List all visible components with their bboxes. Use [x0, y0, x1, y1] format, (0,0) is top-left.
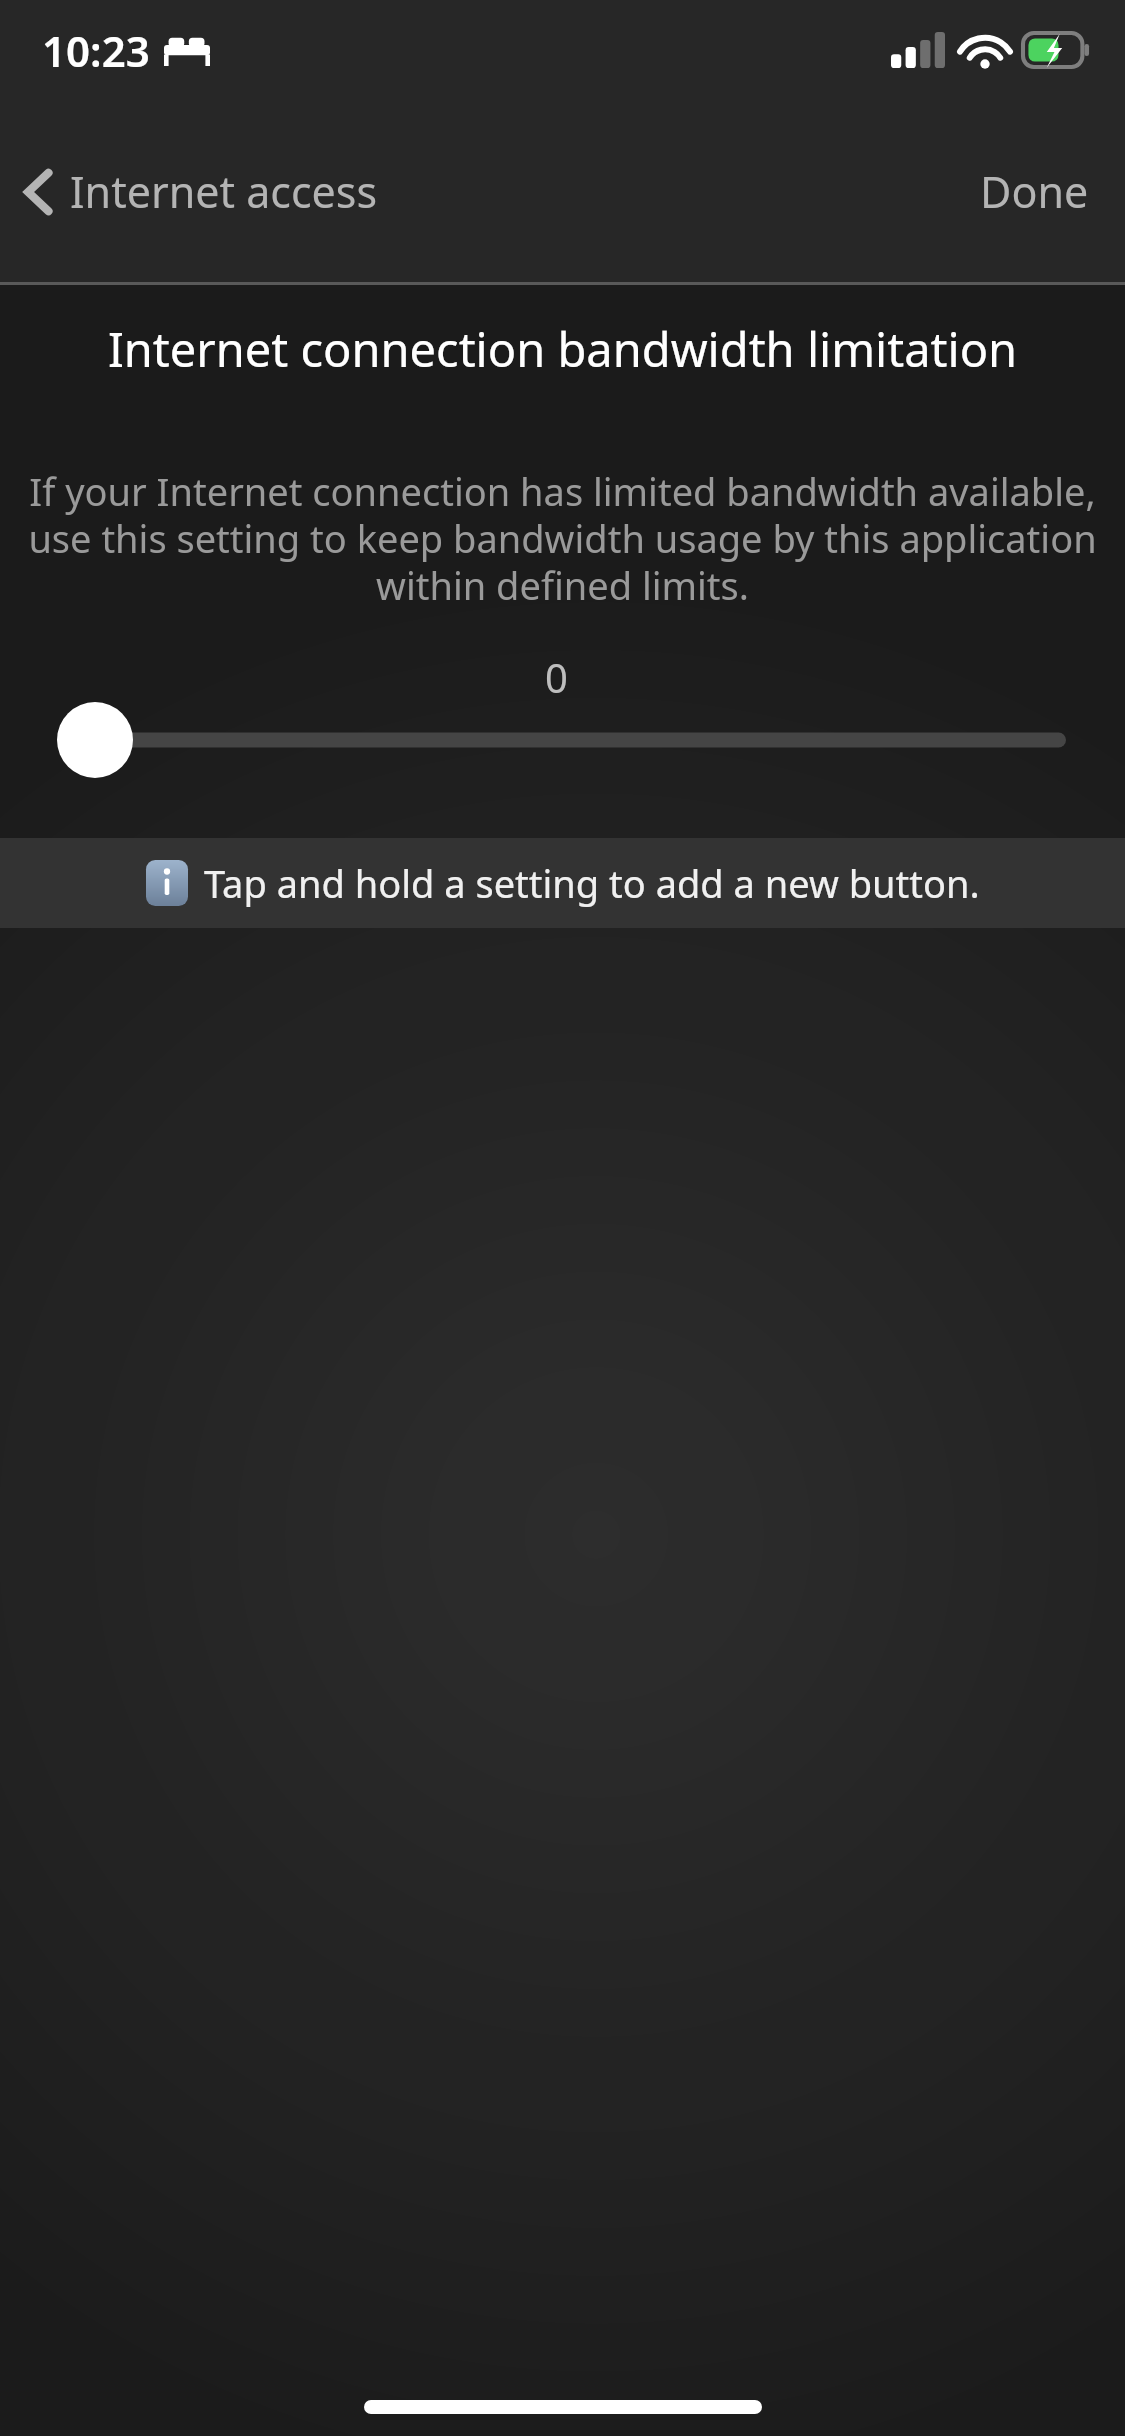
- staticText: Tap and hold a setting to add a new butt…: [204, 857, 980, 909]
- button[interactable]: Tap and hold a setting to add a new butt…: [0, 838, 1125, 928]
- staticText: 0: [545, 650, 568, 704]
- staticText: Internet connection bandwidth limitation: [28, 317, 1097, 381]
- button[interactable]: Done: [944, 146, 1125, 237]
- button[interactable]: Internet access: [0, 148, 396, 235]
- staticText: If your Internet connection has limited …: [16, 465, 1109, 611]
- staticText: Done: [980, 162, 1089, 221]
- staticText: Internet access: [70, 162, 378, 221]
- button[interactable]: Bandwidth limit slider: [0, 690, 1125, 790]
- staticText: 10:23: [42, 22, 150, 79]
